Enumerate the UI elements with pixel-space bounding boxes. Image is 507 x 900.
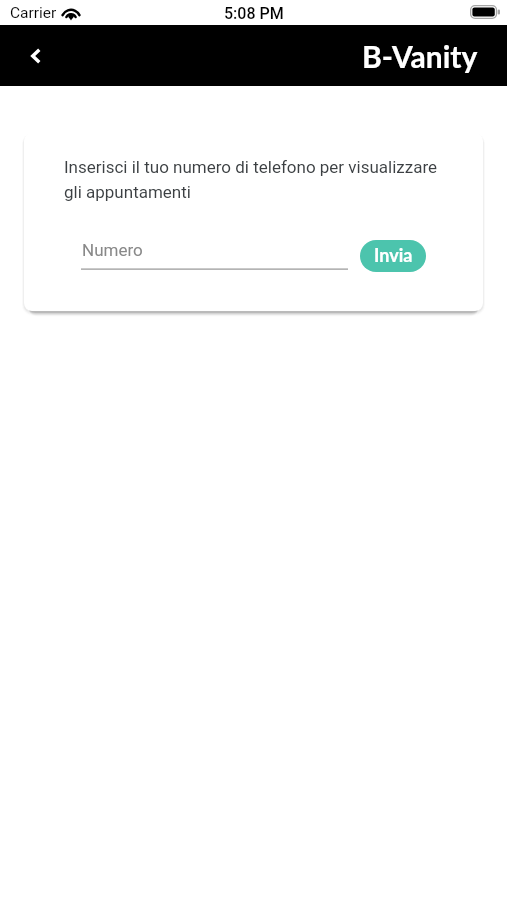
staticText: 5:08 PM [224,4,284,23]
staticText: Inserisci il tuo numero di telefono per … [64,157,444,202]
button[interactable]: Back [14,40,56,71]
staticText: Carrier [10,4,57,22]
staticText: Numero [82,240,143,260]
button[interactable]: Numero [81,233,348,271]
staticText: Invia [374,244,413,266]
button[interactable]: Invia [360,240,426,272]
staticText: B-Vanity [362,38,478,74]
